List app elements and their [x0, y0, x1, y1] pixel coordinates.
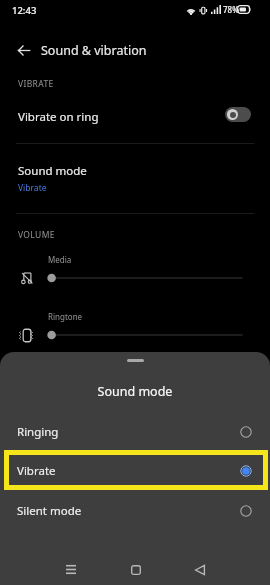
staticText: 12:43 [12, 4, 37, 17]
button[interactable]: Recent apps [52, 550, 89, 585]
staticText: Silent mode [17, 503, 82, 519]
staticText: Sound mode [0, 383, 270, 400]
button[interactable]: Ringing [0, 412, 270, 451]
button[interactable]: Vibrate [0, 451, 270, 490]
staticText: Vibrate [18, 182, 47, 194]
staticText: Ringing [17, 424, 59, 440]
staticText: Ringtone [48, 311, 83, 322]
button[interactable]: Back [181, 550, 218, 585]
button[interactable]: Silent mode [0, 491, 270, 530]
staticText: Sound & vibration [41, 42, 147, 59]
staticText: Media [48, 254, 72, 265]
button[interactable]: Sound mode [0, 144, 270, 213]
staticText: Vibrate on ring [18, 109, 99, 125]
button[interactable]: Back [8, 35, 39, 66]
staticText: VOLUME [18, 229, 55, 241]
staticText: Vibrate [17, 463, 56, 479]
button[interactable]: Vibrate on ring [0, 92, 270, 143]
staticText: VIBRATE [18, 78, 54, 90]
staticText: Sound mode [18, 163, 87, 179]
staticText: 78% [223, 4, 239, 15]
button[interactable]: Home [117, 550, 154, 585]
